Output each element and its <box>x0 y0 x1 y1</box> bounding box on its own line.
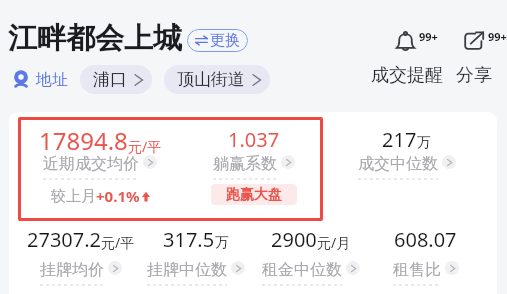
staticText: 较上月 <box>51 187 96 206</box>
button[interactable]: 2900 <box>253 226 368 280</box>
staticText: 挂牌中位数 <box>147 260 227 280</box>
staticText: 99+ <box>419 29 438 44</box>
staticText: 99+ <box>488 29 507 44</box>
staticText: 万 <box>417 134 431 152</box>
staticText: 217 <box>382 126 417 153</box>
staticText: 地址 <box>36 70 68 90</box>
staticText: 近期成交均价 <box>43 154 139 174</box>
staticText: 江畔都会上城 <box>8 20 182 57</box>
staticText: 浦口 <box>93 69 127 90</box>
staticText: 成交提醒 <box>371 64 443 87</box>
staticText: 608.07 <box>394 226 457 253</box>
button[interactable]: 分享 <box>464 31 507 50</box>
staticText: 租售比 <box>393 260 441 280</box>
staticText: 317.5 <box>163 226 215 253</box>
staticText: 跑赢大盘 <box>226 186 282 204</box>
staticText: 万 <box>215 234 229 252</box>
button[interactable]: 更换 <box>187 29 248 52</box>
staticText: 元/平 <box>101 233 135 252</box>
staticText: 2900 <box>271 226 317 253</box>
staticText: 躺赢系数 <box>213 154 277 174</box>
staticText: 元/月 <box>317 233 351 252</box>
button[interactable]: 跑赢大盘 <box>211 184 297 205</box>
button[interactable]: 608.07 <box>368 226 483 280</box>
staticText: 分享 <box>456 64 492 87</box>
staticText: +0.1% <box>96 186 140 206</box>
button[interactable]: 成交提醒 <box>396 31 438 51</box>
button[interactable]: 浦口 <box>80 65 152 94</box>
button[interactable] <box>18 117 323 221</box>
staticText: 元/平 <box>128 137 162 156</box>
staticText: 租金中位数 <box>262 260 342 280</box>
staticText: 17894.8 <box>39 124 128 157</box>
staticText: 1.037 <box>228 126 280 153</box>
staticText: 挂牌均价 <box>40 260 104 280</box>
button[interactable]: 顶山街道 <box>164 65 270 94</box>
staticText: 顶山街道 <box>177 69 245 90</box>
button[interactable]: 27307.2 <box>23 226 138 280</box>
staticText: 更换 <box>210 31 240 50</box>
button[interactable]: 317.5 <box>138 226 253 280</box>
staticText: 27307.2 <box>27 226 101 253</box>
staticText: 成交中位数 <box>358 154 438 174</box>
